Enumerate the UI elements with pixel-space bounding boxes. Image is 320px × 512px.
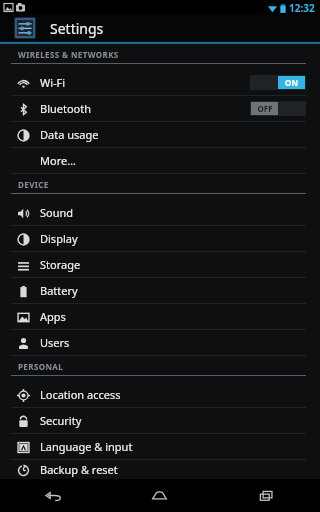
- staticText: PERSONAL: [18, 361, 64, 372]
- staticText: Apps: [40, 309, 66, 324]
- staticText: Users: [40, 335, 70, 350]
- staticText: Storage: [40, 257, 81, 272]
- staticText: DEVICE: [18, 179, 49, 190]
- button[interactable]: Bluetooth: [0, 96, 320, 121]
- staticText: Data usage: [40, 127, 99, 142]
- button[interactable]: Sound: [0, 200, 320, 225]
- button[interactable]: Language & input: [0, 434, 320, 459]
- staticText: ON: [285, 77, 298, 88]
- staticText: Sound: [40, 205, 74, 220]
- button[interactable]: Wi-Fi: [0, 70, 320, 95]
- button[interactable]: Data usage: [0, 122, 320, 147]
- staticText: WIRELESS & NETWORKS: [18, 49, 119, 60]
- button[interactable]: Storage: [0, 252, 320, 277]
- staticText: Location access: [40, 387, 121, 402]
- button[interactable]: Home: [106, 479, 213, 512]
- button[interactable]: Settings icon: [0, 15, 320, 41]
- staticText: Backup & reset: [40, 462, 118, 477]
- staticText: Battery: [40, 283, 78, 298]
- button[interactable]: More…: [0, 148, 320, 173]
- staticText: Language & input: [40, 439, 133, 454]
- button[interactable]: Back: [0, 479, 106, 512]
- button[interactable]: Backup & reset: [0, 460, 320, 479]
- button[interactable]: Battery: [0, 278, 320, 303]
- staticText: Bluetooth: [40, 101, 92, 116]
- staticText: Display: [40, 231, 78, 246]
- button[interactable]: Apps: [0, 304, 320, 329]
- staticText: Settings: [50, 19, 104, 38]
- staticText: Security: [40, 413, 82, 428]
- staticText: More…: [40, 153, 76, 168]
- staticText: Wi-Fi: [40, 75, 66, 90]
- button[interactable]: Switch off: [250, 101, 306, 116]
- button[interactable]: Switch on: [250, 75, 306, 90]
- button[interactable]: Location access: [0, 382, 320, 407]
- staticText: OFF: [257, 103, 273, 114]
- button[interactable]: Security: [0, 408, 320, 433]
- button[interactable]: Users: [0, 330, 320, 355]
- button[interactable]: Recent apps: [213, 479, 320, 512]
- other: Settings icon: [14, 17, 36, 39]
- staticText: 12:32: [289, 1, 315, 15]
- button[interactable]: Display: [0, 226, 320, 251]
